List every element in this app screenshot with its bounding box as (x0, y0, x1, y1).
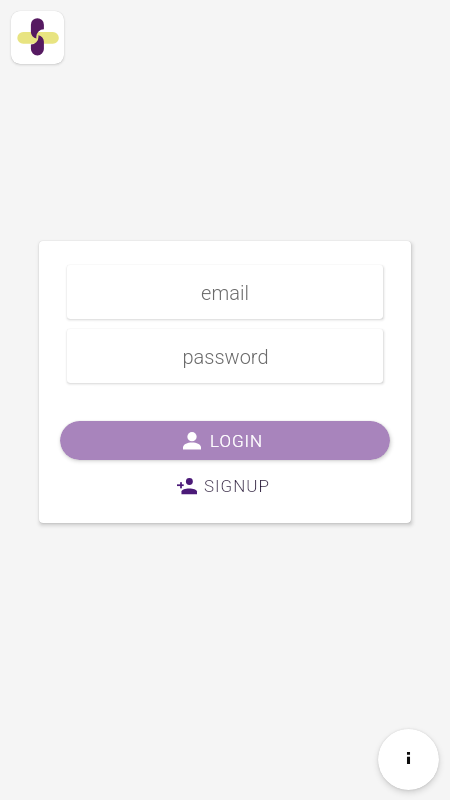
staticText: LOGIN (210, 431, 264, 451)
button[interactable]: password (67, 329, 383, 383)
button[interactable]: LOGIN (60, 421, 390, 460)
staticText: email (201, 281, 249, 304)
button[interactable]: SIGNUP (167, 471, 280, 501)
button[interactable]: App logo (11, 11, 64, 64)
staticText: password (182, 345, 269, 368)
button[interactable]: email (67, 265, 383, 319)
staticText: SIGNUP (204, 476, 270, 496)
button[interactable]: Info (378, 729, 439, 790)
